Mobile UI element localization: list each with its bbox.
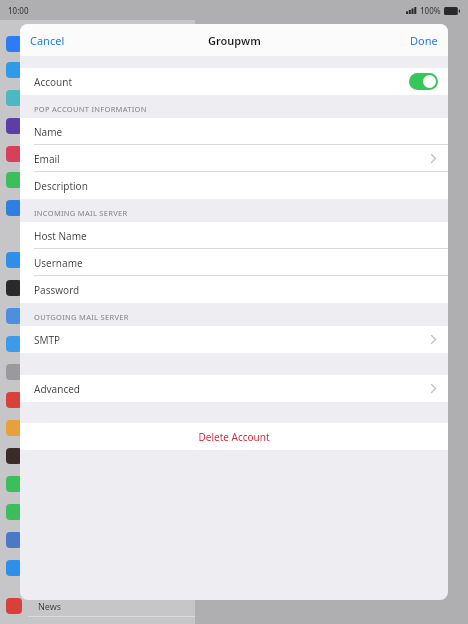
- staticText: Name: [34, 125, 63, 139]
- staticText: Host Name: [34, 229, 87, 243]
- button[interactable]: Host Name: [20, 222, 448, 249]
- staticText: 10:00: [8, 5, 29, 16]
- button[interactable]: Done: [400, 26, 448, 55]
- staticText: INCOMING MAIL SERVER: [34, 208, 128, 218]
- staticText: 100%: [420, 5, 441, 16]
- button[interactable]: Username: [20, 249, 448, 276]
- button[interactable]: Delete Account: [20, 423, 448, 450]
- staticText: SMTP: [34, 333, 61, 347]
- staticText: Username: [34, 256, 83, 270]
- button[interactable]: Password: [20, 276, 448, 303]
- other: Account enabled toggle: [409, 73, 438, 90]
- staticText: News: [38, 600, 62, 612]
- button[interactable]: Name: [20, 118, 448, 145]
- staticText: Account: [34, 75, 73, 89]
- staticText: Done: [410, 33, 438, 48]
- button[interactable]: Advanced: [20, 375, 448, 402]
- staticText: Description: [34, 179, 88, 193]
- button[interactable]: Account: [20, 68, 448, 95]
- button[interactable]: Email: [20, 145, 448, 172]
- button[interactable]: Description: [20, 172, 448, 199]
- staticText: Password: [34, 283, 80, 297]
- staticText: Email: [34, 152, 60, 166]
- staticText: Groupwm: [208, 33, 261, 48]
- button[interactable]: Cancel: [20, 26, 75, 55]
- staticText: Advanced: [34, 382, 80, 396]
- button[interactable]: SMTP: [20, 326, 448, 353]
- staticText: Cancel: [30, 33, 65, 48]
- staticText: Delete Account: [198, 430, 270, 444]
- staticText: OUTGOING MAIL SERVER: [34, 312, 129, 322]
- staticText: POP ACCOUNT INFORMATION: [34, 104, 147, 114]
